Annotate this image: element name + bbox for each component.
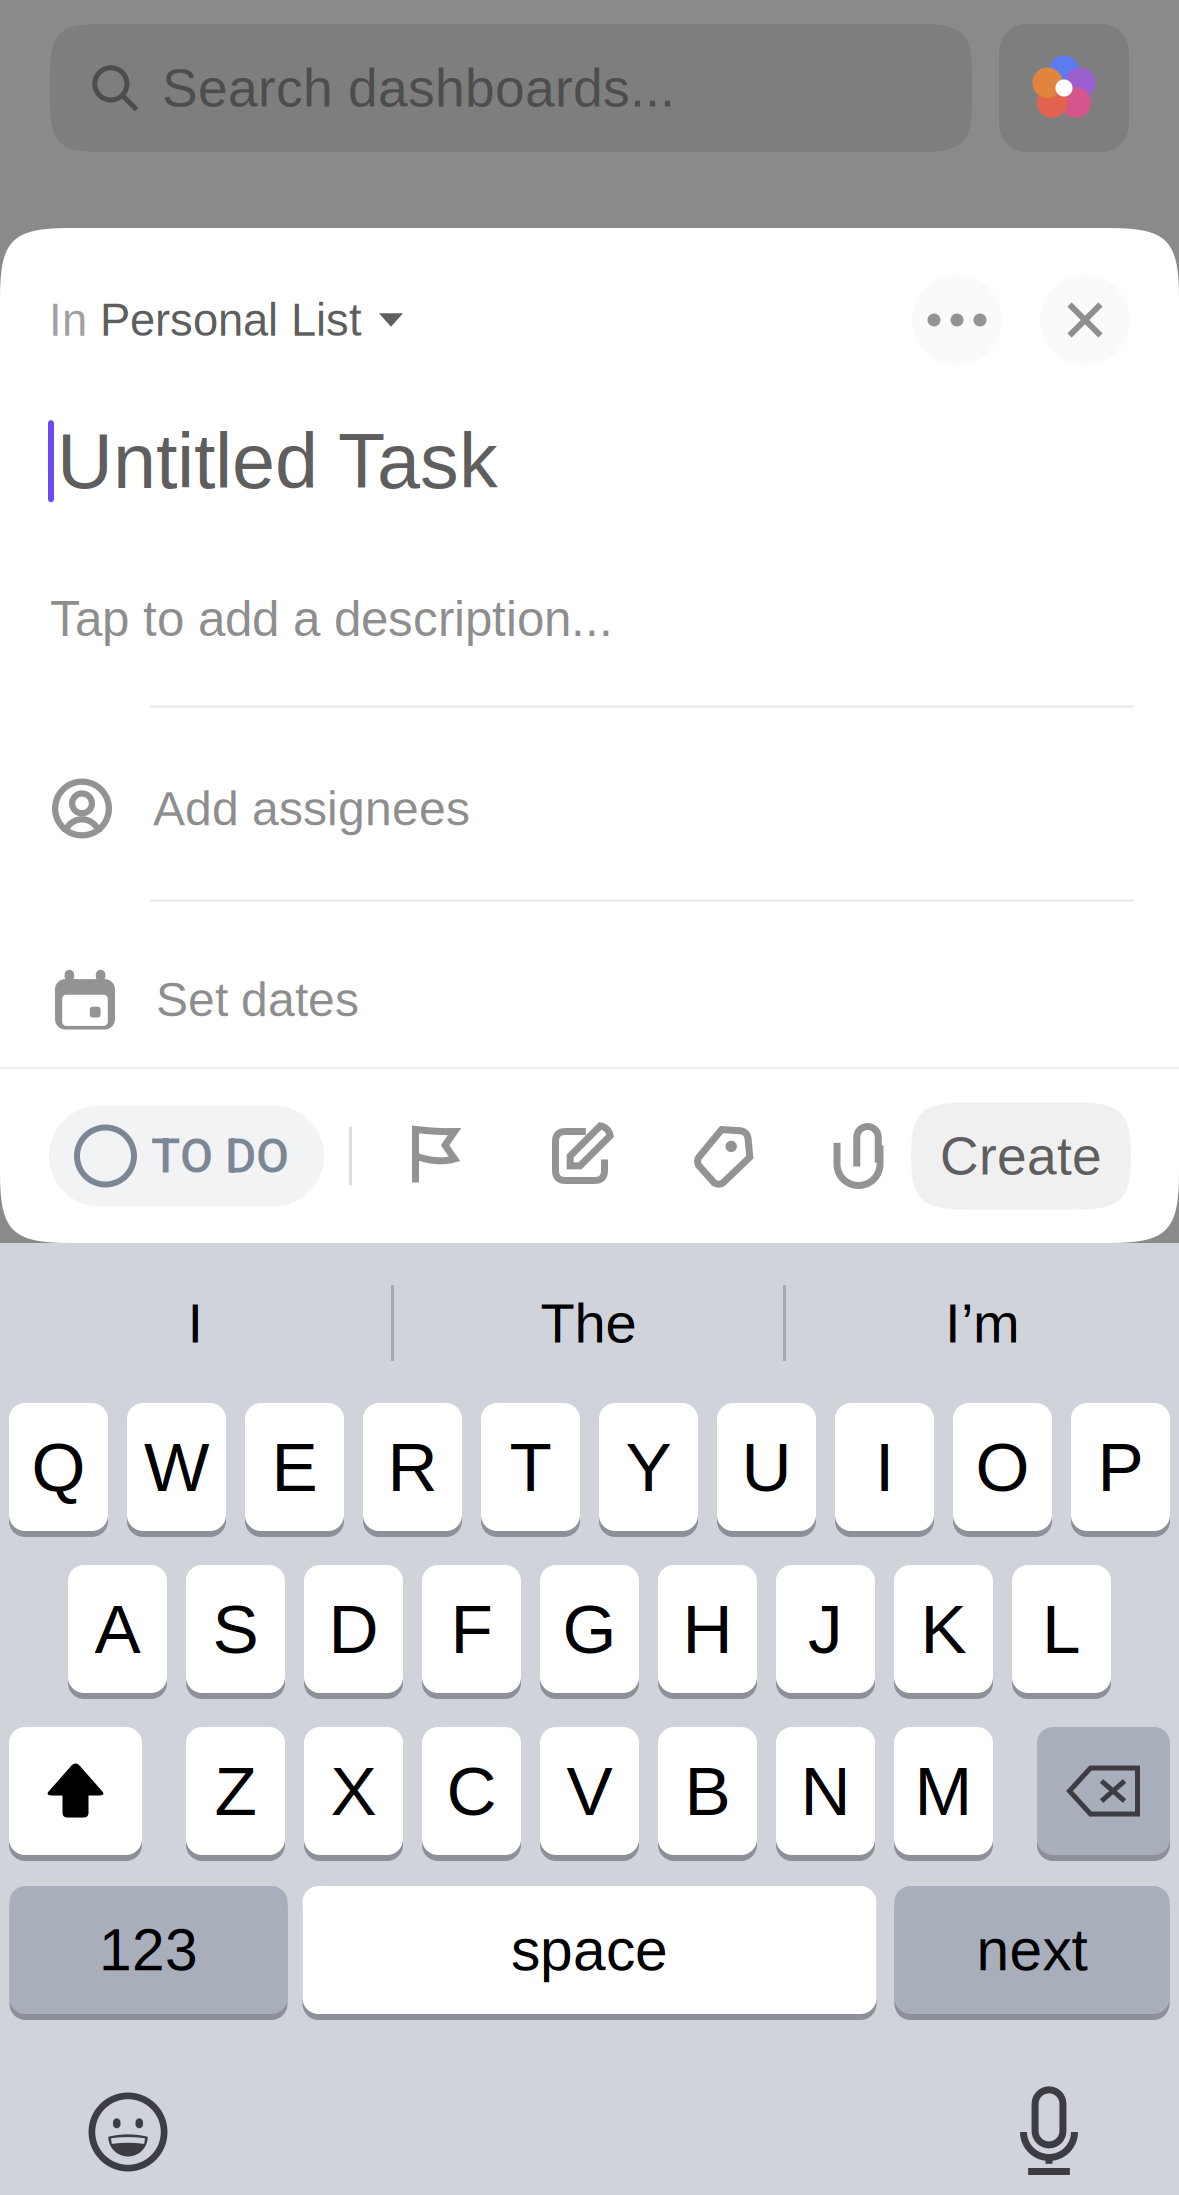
button[interactable]: C [422,1727,521,1855]
staticText: N [800,1752,850,1830]
staticText: Tap to add a description... [50,591,613,646]
staticText: K [920,1590,966,1668]
button[interactable]: R [363,1403,462,1531]
staticText: P [1097,1428,1143,1506]
staticText: I [187,1292,203,1354]
staticText: V [566,1752,612,1830]
staticText: I [875,1428,894,1506]
button[interactable]: TO DO [49,1105,324,1206]
staticText: 123 [99,1917,198,1983]
staticText: E [271,1428,317,1506]
staticText: C [446,1752,496,1830]
button[interactable]: Y [599,1403,698,1531]
staticText: Set dates [156,973,359,1026]
button[interactable]: The [394,1264,783,1381]
button[interactable]: H [658,1565,757,1693]
button[interactable]: Edit [518,1100,642,1212]
button[interactable]: next [894,1886,1169,2014]
staticText: Search dashboards... [162,58,675,118]
button[interactable]: I [0,1264,391,1381]
staticText: M [914,1752,972,1830]
button[interactable]: E [245,1403,344,1531]
staticText: I’m [945,1292,1020,1354]
staticText: H [682,1590,732,1668]
button[interactable]: Set dates [0,951,1179,1047]
button[interactable]: Close [1040,275,1130,365]
staticText: R [387,1428,437,1506]
staticText: In [49,295,100,345]
button[interactable]: U [717,1403,816,1531]
staticText: X [330,1752,376,1830]
staticText: Untitled Task [57,418,498,504]
staticText: space [511,1917,668,1983]
button[interactable]: P [1071,1403,1170,1531]
button[interactable]: Add assignees [0,760,1179,856]
staticText: The [540,1292,636,1354]
button[interactable]: More options [912,275,1002,365]
button[interactable]: L [1012,1565,1111,1693]
button[interactable]: V [540,1727,639,1855]
button[interactable]: 123 [9,1886,287,2014]
button[interactable]: B [658,1727,757,1855]
staticText: Create [940,1126,1102,1186]
button[interactable]: Q [9,1403,108,1531]
button[interactable]: D [304,1565,403,1693]
button[interactable]: N [776,1727,875,1855]
staticText: Z [214,1752,256,1830]
staticText: T [509,1428,551,1506]
staticText: S [212,1590,258,1668]
button[interactable]: space [302,1886,876,2014]
staticText: next [976,1917,1087,1983]
button[interactable]: Priority [352,1100,518,1212]
staticText: J [808,1590,843,1668]
button[interactable]: T [481,1403,580,1531]
button[interactable]: O [953,1403,1052,1531]
staticText: O [975,1428,1029,1506]
staticText: F [450,1590,492,1668]
button[interactable]: Emoji [68,2082,188,2182]
staticText: W [144,1428,209,1506]
button[interactable]: Z [186,1727,285,1855]
button[interactable]: Shift [9,1727,142,1855]
button[interactable]: Create [911,1102,1131,1209]
staticText: Q [31,1428,85,1506]
button[interactable]: Attach [806,1100,911,1212]
button[interactable]: In [49,290,403,350]
staticText: Add assignees [153,782,470,835]
staticText: U [741,1428,791,1506]
staticText: L [1042,1590,1081,1668]
button[interactable]: Tags [642,1100,806,1212]
button[interactable]: I [835,1403,934,1531]
staticText: TO DO [151,1128,289,1184]
button[interactable]: W [127,1403,226,1531]
button[interactable]: K [894,1565,993,1693]
button[interactable]: F [422,1565,521,1693]
button[interactable]: Delete [1037,1727,1170,1855]
button[interactable]: M [894,1727,993,1855]
button[interactable]: A [68,1565,167,1693]
button[interactable]: Dictate [989,2082,1109,2182]
button[interactable]: I’m [786,1264,1179,1381]
staticText: B [684,1752,730,1830]
staticText: A [94,1590,140,1668]
staticText: D [328,1590,378,1668]
button[interactable]: X [304,1727,403,1855]
button[interactable]: J [776,1565,875,1693]
staticText: Personal List [100,295,362,345]
staticText: Y [625,1428,671,1506]
button[interactable]: G [540,1565,639,1693]
button[interactable]: S [186,1565,285,1693]
staticText: G [562,1590,616,1668]
